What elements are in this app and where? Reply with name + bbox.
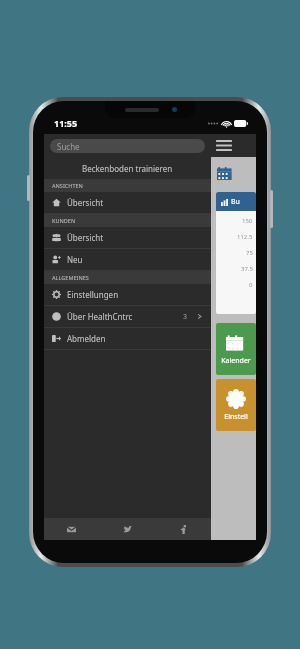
staticText: Suche <box>57 141 80 152</box>
button[interactable]: Abmelden <box>44 328 211 349</box>
button[interactable]: Neu <box>44 249 211 270</box>
staticText: 112.5 <box>237 233 253 241</box>
button[interactable]: Kalender <box>216 323 256 375</box>
staticText: ANSICHTEN <box>52 182 83 189</box>
staticText: 3 <box>183 312 188 322</box>
button[interactable]: Email <box>44 518 99 540</box>
button[interactable]: Übersicht <box>44 192 211 213</box>
staticText: 150 <box>242 217 253 225</box>
button[interactable]: Twitter <box>99 518 155 540</box>
button[interactable]: Facebook <box>155 518 211 540</box>
staticText: Beckenboden trainieren <box>82 163 173 174</box>
button[interactable]: Bu <box>216 192 256 314</box>
staticText: 0 <box>249 281 253 289</box>
button[interactable]: Übersicht <box>44 227 211 248</box>
button[interactable]: Einstell <box>216 379 256 431</box>
staticText: Übersicht <box>67 197 104 208</box>
staticText: Über HealthCntrc <box>67 311 133 322</box>
staticText: ALLGEMEINES <box>52 274 89 281</box>
staticText: Kalender <box>221 356 251 366</box>
staticText: 11:55 <box>54 117 78 129</box>
staticText: Einstellungen <box>67 289 119 300</box>
staticText: 37.5 <box>241 265 253 273</box>
button[interactable]: Über HealthCntrc <box>44 306 211 327</box>
button[interactable]: Einstellungen <box>44 284 211 305</box>
button[interactable]: Menu <box>211 134 256 157</box>
staticText: Bu <box>231 197 240 207</box>
button[interactable]: Suche <box>50 139 205 153</box>
staticText: Abmelden <box>67 333 106 344</box>
staticText: 75 <box>246 249 253 257</box>
staticText: Neu <box>67 254 83 265</box>
staticText: Übersicht <box>67 232 104 243</box>
staticText: Einstell <box>224 412 248 422</box>
staticText: KUNDEN <box>52 217 76 224</box>
